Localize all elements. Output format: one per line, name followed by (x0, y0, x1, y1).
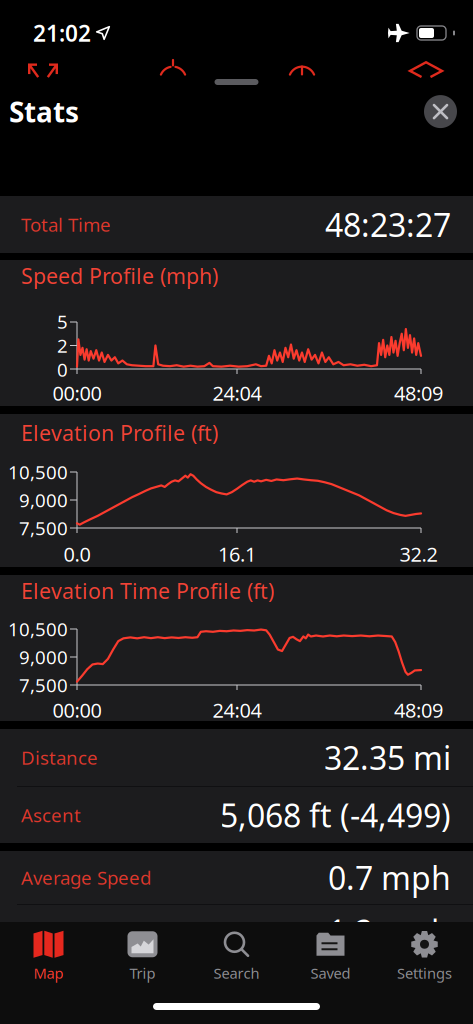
staticText: 24:04 (212, 380, 261, 406)
staticText: 00:00 (52, 380, 101, 406)
staticText: Ascent (21, 803, 81, 827)
button[interactable]: Speed gauge (288, 60, 316, 78)
staticText: Speed Profile (mph) (21, 262, 218, 290)
staticText: Elevation Profile (ft) (21, 419, 218, 447)
staticText: 7,500 (19, 516, 68, 540)
button[interactable]: Search (189, 927, 283, 985)
staticText: 2 (57, 333, 68, 358)
staticText: 5,068 ft (-4,499) (220, 794, 451, 836)
staticText: 10,500 (8, 460, 68, 484)
staticText: 5 (57, 309, 68, 334)
staticText: 24:04 (212, 697, 261, 723)
staticText: 10,500 (8, 617, 68, 641)
staticText: Distance (21, 745, 98, 770)
staticText: Elevation Time Profile (ft) (21, 577, 274, 605)
button[interactable]: Map view (410, 61, 442, 77)
button[interactable]: Close (424, 95, 457, 128)
button[interactable]: Saved (283, 927, 377, 985)
staticText: Stats (9, 93, 79, 130)
staticText: Moving Speed (21, 919, 145, 943)
staticText: 7,500 (19, 673, 68, 697)
button[interactable]: Settings (377, 927, 471, 985)
staticText: 0 (57, 357, 68, 382)
staticText: 0.7 mph (328, 856, 451, 899)
staticText: Saved (310, 963, 350, 983)
staticText: 48:23:27 (325, 203, 451, 246)
staticText: Settings (397, 963, 452, 983)
staticText: 32.35 mi (324, 736, 451, 779)
staticText: 1.2 mph (328, 910, 451, 952)
staticText: 48:09 (394, 380, 443, 406)
staticText: 32.2 (399, 541, 437, 567)
button[interactable]: Expand map (28, 60, 58, 78)
button[interactable]: Trip (95, 927, 189, 985)
staticText: Total Time (21, 212, 111, 237)
staticText: 48:09 (394, 697, 443, 723)
staticText: Map (33, 963, 63, 983)
staticText: Average Speed (21, 865, 151, 890)
button[interactable]: Map (1, 927, 95, 985)
button[interactable]: Compass (159, 60, 187, 78)
staticText: 00:00 (52, 697, 101, 723)
staticText: 0.0 (63, 541, 90, 567)
staticText: 9,000 (19, 645, 68, 669)
staticText: Trip (129, 963, 155, 983)
staticText: 9,000 (19, 488, 68, 512)
staticText: 16.1 (218, 541, 256, 567)
staticText: Search (213, 963, 259, 983)
staticText: 21:02 (33, 18, 91, 48)
